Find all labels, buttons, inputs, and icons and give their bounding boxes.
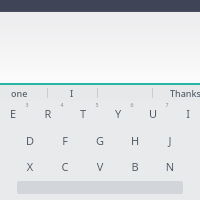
staticText: 6 bbox=[130, 101, 134, 108]
button[interactable]: T bbox=[66, 102, 100, 124]
staticText: J bbox=[153, 133, 187, 148]
staticText: I bbox=[70, 87, 74, 99]
button[interactable]: H bbox=[118, 129, 152, 151]
button[interactable]: E bbox=[0, 102, 30, 124]
staticText: H bbox=[118, 133, 152, 148]
button[interactable]: D bbox=[13, 129, 47, 151]
staticText: I bbox=[171, 106, 200, 121]
staticText: 3 bbox=[25, 101, 29, 108]
staticText: R bbox=[31, 106, 65, 121]
staticText: 4 bbox=[60, 101, 64, 108]
staticText: Thanks bbox=[170, 87, 200, 99]
button[interactable]: U bbox=[136, 102, 170, 124]
staticText: V bbox=[83, 159, 117, 174]
staticText: U bbox=[136, 106, 170, 121]
staticText: C bbox=[48, 159, 82, 174]
staticText: one bbox=[11, 87, 28, 99]
button[interactable]: J bbox=[153, 129, 187, 151]
button[interactable]: V bbox=[83, 155, 117, 177]
button[interactable]: R bbox=[31, 102, 65, 124]
button[interactable]: Thanks bbox=[152, 85, 200, 101]
staticText: 5 bbox=[95, 101, 99, 108]
button[interactable]: I bbox=[47, 85, 97, 101]
button[interactable]: I bbox=[171, 102, 200, 124]
button[interactable]: B bbox=[118, 155, 152, 177]
button[interactable]: C bbox=[48, 155, 82, 177]
button[interactable]: one bbox=[0, 85, 47, 101]
button[interactable]: X bbox=[13, 155, 47, 177]
button[interactable]: F bbox=[48, 129, 82, 151]
staticText: D bbox=[13, 133, 47, 148]
staticText: B bbox=[118, 159, 152, 174]
button[interactable]: G bbox=[83, 129, 117, 151]
button[interactable]: Y bbox=[101, 102, 135, 124]
staticText: E bbox=[0, 106, 30, 121]
staticText: F bbox=[48, 133, 82, 148]
staticText: X bbox=[13, 159, 47, 174]
staticText: G bbox=[83, 133, 117, 148]
button[interactable] bbox=[0, 12, 200, 83]
staticText: Y bbox=[101, 106, 135, 121]
staticText: T bbox=[66, 106, 100, 121]
staticText: 7 bbox=[165, 101, 169, 108]
staticText: N bbox=[153, 159, 187, 174]
button[interactable]: N bbox=[153, 155, 187, 177]
